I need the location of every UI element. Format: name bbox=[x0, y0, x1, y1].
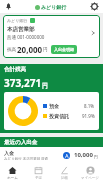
button[interactable]: 設定 bbox=[89, 1, 100, 12]
staticText: 91.9% bbox=[82, 113, 95, 119]
staticText: 預金 bbox=[49, 103, 59, 109]
staticText: みどり銀行 bbox=[7, 18, 28, 23]
staticText: 入出金明細 bbox=[54, 47, 74, 52]
button[interactable]: 預金 bbox=[4, 92, 99, 130]
staticText: 本店営業部 bbox=[7, 26, 35, 33]
button[interactable]: お知らせ bbox=[3, 1, 14, 12]
staticText: 10,000 bbox=[74, 151, 93, 159]
button[interactable]: 記帳 bbox=[51, 163, 77, 183]
staticText: 普通 001-0000000 bbox=[7, 34, 45, 40]
button[interactable]: 入出金明細 bbox=[51, 45, 77, 54]
button[interactable]: 予定 bbox=[25, 163, 51, 183]
staticText: 入金 bbox=[4, 150, 14, 156]
staticText: 最近の入出金 bbox=[4, 139, 38, 146]
button[interactable]: みどり銀行 bbox=[3, 15, 100, 58]
button[interactable]: 入金 bbox=[0, 147, 103, 163]
staticText: 記帳 bbox=[61, 176, 68, 180]
staticText: 投資信託 bbox=[49, 113, 69, 119]
staticText: 残高 bbox=[7, 47, 16, 53]
staticText: マイページ bbox=[81, 176, 99, 180]
staticText: 円 bbox=[43, 47, 48, 53]
staticText: 373,271 bbox=[4, 76, 42, 90]
staticText: 20,000 bbox=[17, 44, 43, 55]
staticText: ホーム bbox=[7, 176, 18, 180]
staticText: 予定 bbox=[35, 176, 42, 180]
staticText: みどり銀行 bbox=[41, 4, 67, 10]
staticText: 円 bbox=[93, 154, 99, 159]
staticText: 入 bbox=[65, 154, 69, 158]
staticText: 8.1% bbox=[84, 103, 95, 109]
staticText: 合計残高 bbox=[4, 66, 26, 73]
staticText: みどり銀行 本店営業部 普通 bbox=[4, 156, 49, 160]
staticText: 円 bbox=[42, 82, 48, 90]
button[interactable]: マイページ bbox=[77, 163, 103, 183]
button[interactable]: ホーム bbox=[0, 163, 25, 183]
